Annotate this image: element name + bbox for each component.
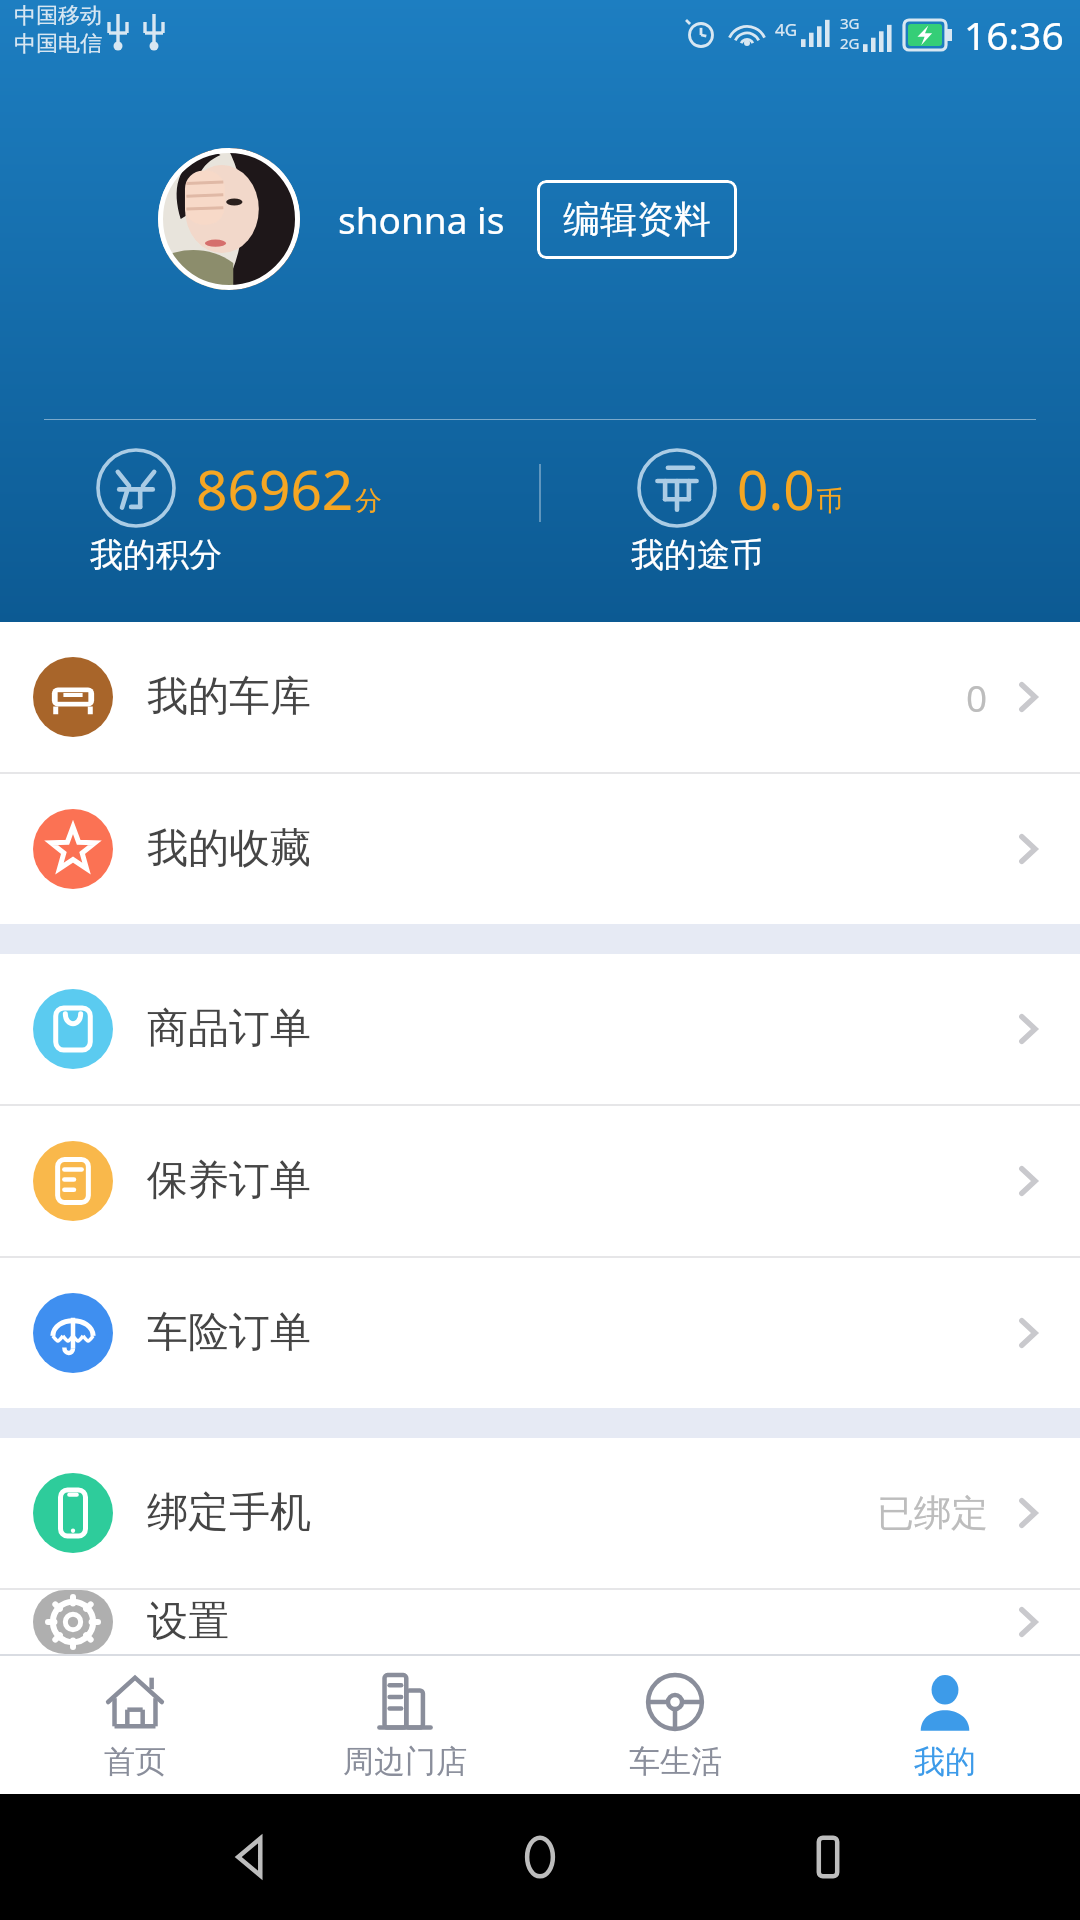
staticText: 分 — [355, 484, 382, 518]
staticText: 86962 — [196, 451, 354, 526]
staticText: 中国电信 — [14, 30, 102, 58]
staticText: 设置 — [147, 1596, 229, 1648]
button[interactable]: 车生活 — [540, 1656, 810, 1794]
button[interactable]: 我的车库 — [0, 622, 1080, 772]
staticText: 已绑定 — [877, 1490, 988, 1537]
staticText: 我的车库 — [147, 671, 311, 723]
button[interactable]: Recent apps — [792, 1821, 864, 1893]
button[interactable]: 绑定手机 — [0, 1438, 1080, 1588]
button[interactable]: Back — [216, 1821, 288, 1893]
staticText: 0 — [966, 672, 988, 722]
staticText: 车险订单 — [147, 1307, 311, 1359]
button[interactable]: 车险订单 — [0, 1258, 1080, 1408]
staticText: 0.0 — [737, 451, 815, 526]
staticText: 我的 — [914, 1742, 976, 1781]
staticText: 3G — [840, 13, 860, 33]
button[interactable]: 0.0 — [541, 448, 1080, 574]
staticText: 商品订单 — [147, 1003, 311, 1055]
staticText: 4G — [775, 18, 798, 41]
staticText: 编辑资料 — [563, 196, 711, 243]
button[interactable]: 首页 — [0, 1656, 270, 1794]
button[interactable]: 商品订单 — [0, 954, 1080, 1104]
staticText: 绑定手机 — [147, 1487, 311, 1539]
staticText: 币 — [816, 484, 843, 518]
staticText: 首页 — [104, 1742, 166, 1781]
staticText: 保养订单 — [147, 1155, 311, 1207]
button[interactable]: 设置 — [0, 1590, 1080, 1654]
button[interactable]: 保养订单 — [0, 1106, 1080, 1256]
staticText: 车生活 — [629, 1742, 722, 1781]
button[interactable]: 编辑资料 — [537, 180, 737, 259]
staticText: 我的途币 — [631, 534, 763, 574]
button[interactable]: Profile photo — [158, 148, 300, 290]
staticText: 16:36 — [964, 8, 1064, 61]
button[interactable]: 我的 — [810, 1656, 1080, 1794]
staticText: 周边门店 — [343, 1742, 467, 1781]
button[interactable]: 86962 — [0, 448, 539, 574]
button[interactable]: 我的收藏 — [0, 774, 1080, 924]
staticText: shonna is — [338, 194, 505, 244]
staticText: 我的积分 — [90, 534, 222, 574]
button[interactable]: Home — [504, 1821, 576, 1893]
staticText: 我的收藏 — [147, 823, 311, 875]
button[interactable]: 周边门店 — [270, 1656, 540, 1794]
staticText: 中国移动 — [14, 2, 102, 30]
staticText: 2G — [840, 33, 860, 53]
